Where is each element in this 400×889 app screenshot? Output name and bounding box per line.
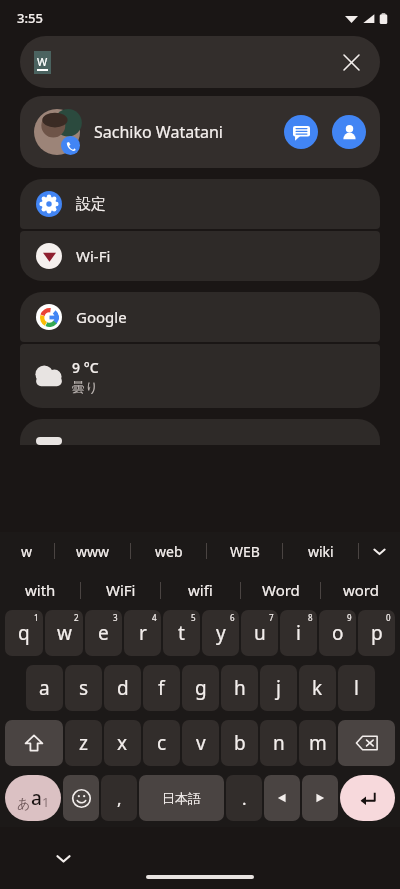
staticText: o xyxy=(332,620,344,646)
staticText: a xyxy=(31,785,42,811)
button[interactable]: d xyxy=(104,665,141,711)
staticText: e xyxy=(98,620,109,646)
button[interactable]: r xyxy=(124,610,161,656)
staticText: y xyxy=(216,620,226,646)
button[interactable]: v xyxy=(182,720,219,766)
button[interactable]: Wi-Fi xyxy=(20,231,380,281)
button[interactable]: f xyxy=(143,665,180,711)
staticText: 9 xyxy=(347,612,352,623)
button[interactable]: Clear xyxy=(336,47,366,77)
staticText: q xyxy=(18,620,30,646)
button[interactable]: j xyxy=(260,665,297,711)
button[interactable]: Emoji xyxy=(63,775,99,821)
button[interactable]: W xyxy=(20,36,380,88)
button[interactable]: , xyxy=(101,775,137,821)
staticText: word xyxy=(343,580,379,600)
button[interactable]: Move cursor right xyxy=(302,775,338,821)
button[interactable]: g xyxy=(182,665,219,711)
button[interactable]: web xyxy=(131,532,206,570)
staticText: w xyxy=(57,620,72,646)
button[interactable]: Backspace xyxy=(338,720,395,766)
button[interactable]: k xyxy=(299,665,336,711)
button[interactable]: o xyxy=(319,610,356,656)
button[interactable]: t xyxy=(163,610,200,656)
staticText: wiki xyxy=(308,542,334,561)
button[interactable]: Sachiko Watatani xyxy=(20,96,380,168)
staticText: w xyxy=(21,542,33,561)
button[interactable]: y xyxy=(202,610,239,656)
staticText: Wi-Fi xyxy=(76,246,111,266)
button[interactable]: w xyxy=(0,532,54,570)
other: Move cursor right xyxy=(314,792,326,804)
button[interactable]: . xyxy=(226,775,262,821)
staticText: 8 xyxy=(308,612,313,623)
button[interactable]: Google xyxy=(20,292,380,342)
staticText: j xyxy=(276,675,281,701)
staticText: c xyxy=(157,730,167,756)
button[interactable]: z xyxy=(65,720,102,766)
button[interactable]: www xyxy=(55,532,130,570)
button[interactable]: e xyxy=(85,610,122,656)
button[interactable]: c xyxy=(143,720,180,766)
button[interactable]: with xyxy=(0,570,80,610)
staticText: z xyxy=(79,730,88,756)
button[interactable]: word xyxy=(321,570,400,610)
staticText: l xyxy=(354,675,359,701)
button[interactable]: Message xyxy=(284,115,318,149)
staticText: 2 xyxy=(74,612,79,623)
staticText: g xyxy=(195,675,207,701)
button[interactable]: Word xyxy=(241,570,320,610)
staticText: 6 xyxy=(230,612,235,623)
staticText: W xyxy=(37,54,48,69)
button[interactable]: wifi xyxy=(161,570,240,610)
staticText: m xyxy=(309,730,327,756)
staticText: 設定 xyxy=(76,195,106,214)
button[interactable]: Shift xyxy=(5,720,63,766)
button[interactable]: i xyxy=(280,610,317,656)
button[interactable]: WiFi xyxy=(81,570,160,610)
button[interactable]: b xyxy=(221,720,258,766)
button[interactable]: Expand suggestions xyxy=(359,532,400,570)
staticText: Sachiko Watatani xyxy=(94,121,223,143)
staticText: v xyxy=(196,730,206,756)
button[interactable]: l xyxy=(338,665,375,711)
staticText: Google xyxy=(76,307,127,327)
staticText: i xyxy=(296,620,301,646)
button[interactable]: a xyxy=(26,665,63,711)
staticText: 4 xyxy=(152,612,157,623)
staticText: . xyxy=(242,787,247,810)
button[interactable]: p xyxy=(358,610,395,656)
button[interactable]: h xyxy=(221,665,258,711)
button[interactable]: Enter xyxy=(340,775,395,821)
staticText: s xyxy=(79,675,89,701)
button[interactable]: u xyxy=(241,610,278,656)
staticText: 0 xyxy=(386,612,391,623)
button[interactable]: w xyxy=(45,610,83,656)
button[interactable]: あ xyxy=(5,775,61,821)
staticText: 1 xyxy=(42,793,50,811)
button[interactable]: 設定 xyxy=(20,179,380,229)
staticText: u xyxy=(254,620,266,646)
button[interactable]: s xyxy=(65,665,102,711)
button[interactable]: wiki xyxy=(283,532,358,570)
button[interactable]: 日本語 xyxy=(139,775,224,821)
staticText: p xyxy=(371,620,383,646)
button[interactable]: WEB xyxy=(207,532,282,570)
staticText: with xyxy=(25,580,56,600)
staticText: 9 °C xyxy=(72,358,99,377)
button[interactable] xyxy=(20,419,380,445)
button[interactable]: Hide keyboard xyxy=(46,841,80,875)
staticText: x xyxy=(117,730,128,756)
staticText: Word xyxy=(262,580,300,600)
staticText: 3 xyxy=(113,612,118,623)
button[interactable]: q xyxy=(5,610,43,656)
staticText: あ xyxy=(17,795,31,811)
button[interactable]: 9 °C xyxy=(20,344,380,408)
other: Move cursor left xyxy=(276,792,288,804)
button[interactable]: x xyxy=(104,720,141,766)
button[interactable]: m xyxy=(299,720,336,766)
button[interactable]: n xyxy=(260,720,297,766)
button[interactable]: Move cursor left xyxy=(264,775,300,821)
staticText: k xyxy=(312,675,323,701)
button[interactable]: Contact xyxy=(332,115,366,149)
